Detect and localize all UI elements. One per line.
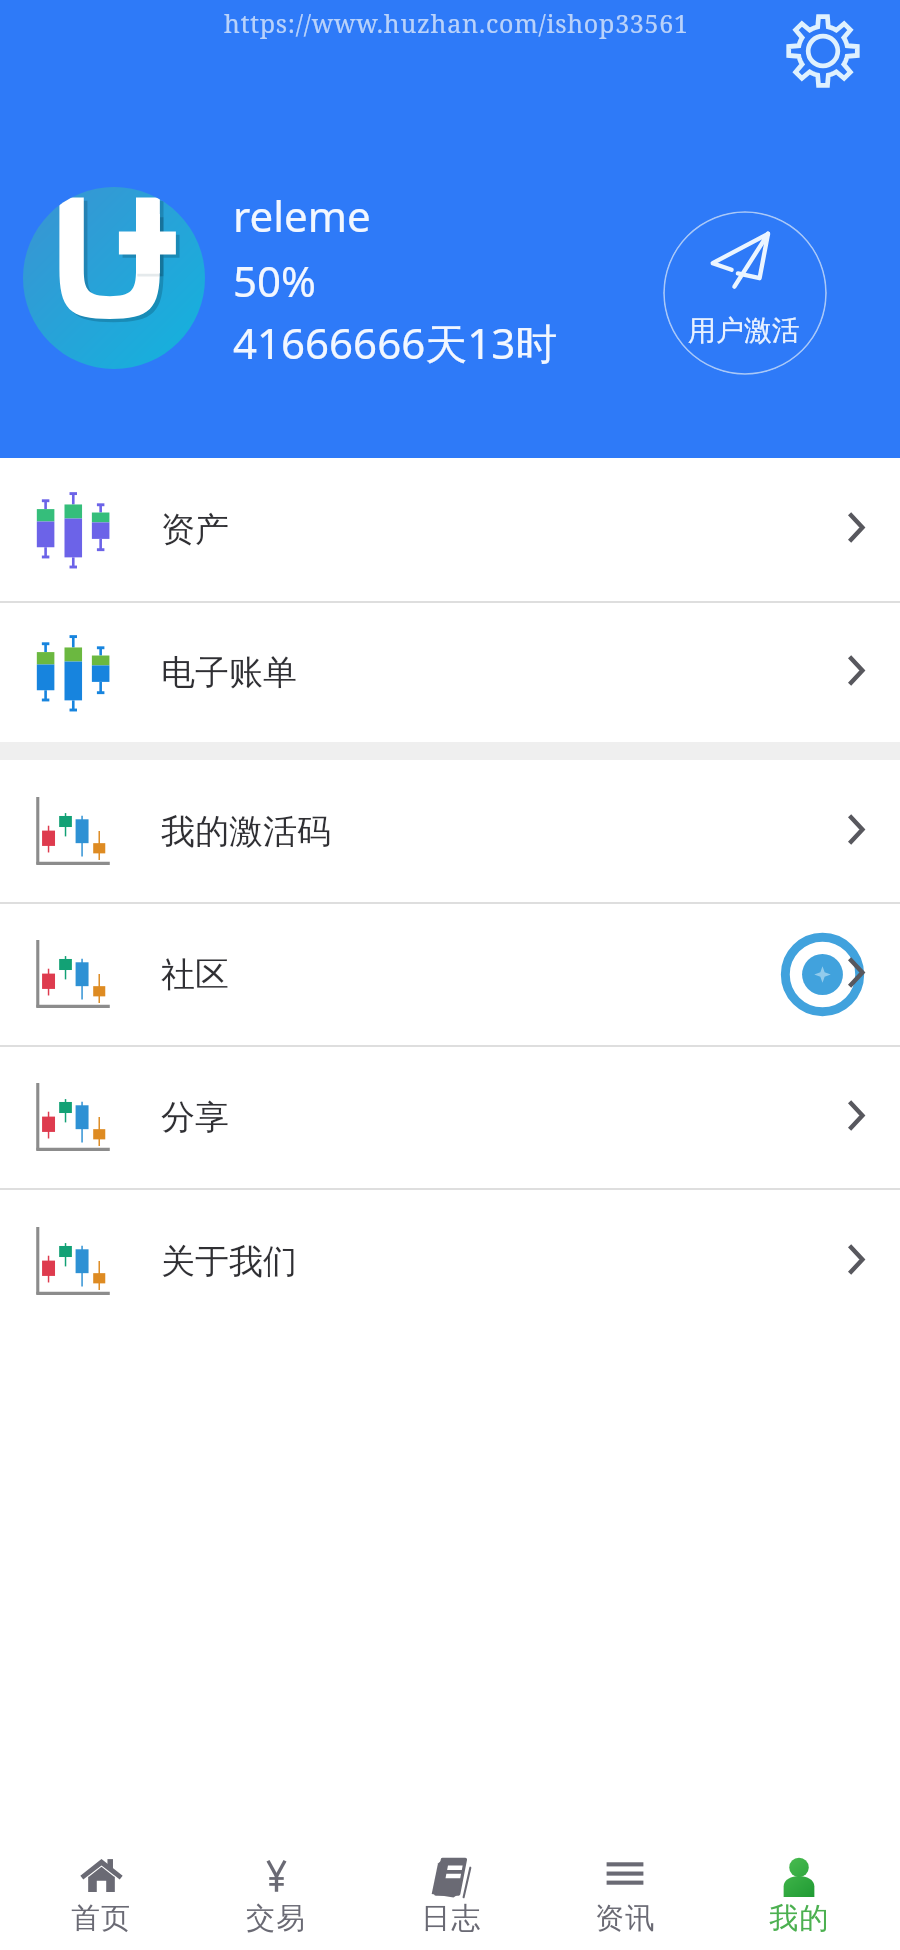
button[interactable]: 日志 — [364, 1800, 538, 1950]
staticText: 我的激活码 — [161, 810, 331, 853]
button[interactable]: 我的 — [712, 1800, 886, 1950]
staticText: 41666666天13时 — [233, 314, 558, 371]
staticText: 50% — [233, 252, 316, 309]
button[interactable]: 我的激活码 — [0, 760, 900, 904]
staticText: 日志 — [421, 1900, 482, 1937]
button[interactable]: Settings — [785, 13, 861, 89]
button[interactable]: 社区 — [0, 904, 900, 1047]
button[interactable]: 电子账单 — [0, 603, 900, 742]
staticText: 交易 — [246, 1900, 307, 1937]
staticText: 用户激活 — [688, 313, 800, 348]
staticText: 分享 — [161, 1096, 229, 1139]
button[interactable]: 分享 — [0, 1047, 900, 1190]
button[interactable]: 资讯 — [538, 1800, 712, 1950]
button[interactable]: 交易 — [189, 1800, 364, 1950]
staticText: https://www.huzhan.com/ishop33561 — [224, 6, 689, 40]
button[interactable]: 首页 — [14, 1800, 189, 1950]
button[interactable]: 关于我们 — [0, 1190, 900, 1333]
staticText: 我的 — [769, 1900, 830, 1937]
button[interactable]: 资产 — [0, 458, 900, 603]
staticText: 关于我们 — [161, 1240, 297, 1283]
staticText: 资产 — [161, 508, 229, 551]
staticText: 首页 — [71, 1900, 132, 1937]
staticText: 电子账单 — [161, 651, 297, 694]
staticText: 社区 — [161, 953, 229, 996]
staticText: 资讯 — [595, 1900, 656, 1937]
button[interactable]: 用户激活 — [663, 211, 827, 375]
staticText: releme — [233, 187, 371, 244]
